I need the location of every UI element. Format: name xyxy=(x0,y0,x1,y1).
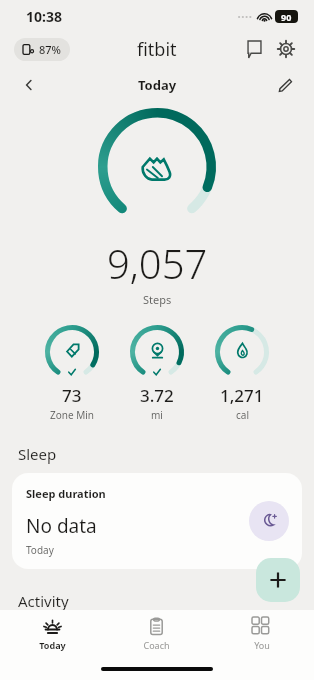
staticText: mi xyxy=(151,408,163,422)
button[interactable]: Sleep duration xyxy=(12,473,302,569)
button[interactable]: Today xyxy=(0,617,104,651)
staticText: You xyxy=(254,639,270,651)
button[interactable]: Edit xyxy=(272,72,298,98)
staticText: 9,057 xyxy=(107,236,208,290)
staticText: Coach xyxy=(143,639,170,651)
button[interactable]: Messages xyxy=(240,35,268,63)
button[interactable]: Previous day xyxy=(16,72,42,98)
button[interactable]: 1,271 xyxy=(215,325,269,422)
staticText: Zone Min xyxy=(50,408,95,422)
staticText: Sleep xyxy=(18,444,314,464)
button[interactable]: Settings xyxy=(272,35,300,63)
staticText: Steps xyxy=(143,292,172,307)
staticText: 90 xyxy=(281,11,292,23)
staticText: No data xyxy=(26,513,97,539)
button[interactable]: You xyxy=(209,617,314,651)
staticText: Activity xyxy=(18,591,314,611)
staticText: Sleep duration xyxy=(26,486,106,501)
staticText: Today xyxy=(26,543,54,557)
button[interactable]: 3.72 xyxy=(130,325,184,422)
button[interactable]: Coach xyxy=(104,617,209,651)
staticText: Today xyxy=(39,639,66,651)
staticText: 73 xyxy=(62,384,82,407)
staticText: fitbit xyxy=(137,37,177,62)
staticText: 87% xyxy=(39,42,61,57)
button[interactable]: 73 xyxy=(45,325,99,422)
button[interactable]: Add xyxy=(256,558,300,602)
staticText: 3.72 xyxy=(140,384,174,407)
button[interactable]: 87% xyxy=(14,38,70,61)
staticText: cal xyxy=(236,408,249,422)
staticText: 10:38 xyxy=(26,7,62,26)
staticText: Today xyxy=(138,76,177,94)
staticText: 1,271 xyxy=(220,384,264,407)
